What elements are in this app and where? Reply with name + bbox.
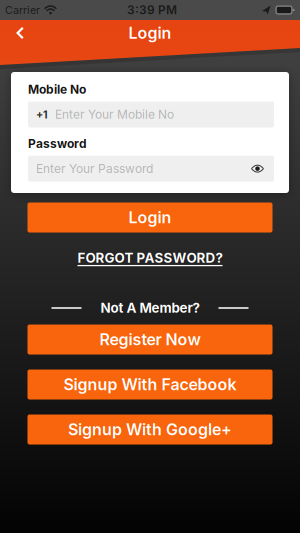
staticText: Not A Member? <box>100 300 199 316</box>
button[interactable]: Login <box>27 202 272 232</box>
button[interactable]: FORGOT PASSWORD? <box>77 250 222 266</box>
button[interactable]: Show Password <box>246 159 269 178</box>
staticText: Password <box>28 136 87 151</box>
staticText: Enter Your Mobile No <box>55 107 174 122</box>
staticText: 3:39 PM <box>127 3 177 17</box>
staticText: Enter Your Password <box>36 162 153 176</box>
button[interactable]: Register Now <box>27 324 272 354</box>
staticText: Signup With Facebook <box>63 375 236 394</box>
button[interactable]: Signup With Facebook <box>27 369 272 399</box>
staticText: Mobile No <box>28 82 86 96</box>
staticText: +1 <box>36 108 48 121</box>
staticText: Signup With Google+ <box>68 420 232 439</box>
staticText: Register Now <box>99 330 200 349</box>
button[interactable]: Back <box>7 19 33 47</box>
staticText: Login <box>128 208 171 227</box>
staticText: Carrier <box>5 4 40 16</box>
button[interactable]: Signup With Google+ <box>27 414 272 444</box>
staticText: FORGOT PASSWORD? <box>77 250 222 266</box>
staticText: Login <box>128 24 171 42</box>
